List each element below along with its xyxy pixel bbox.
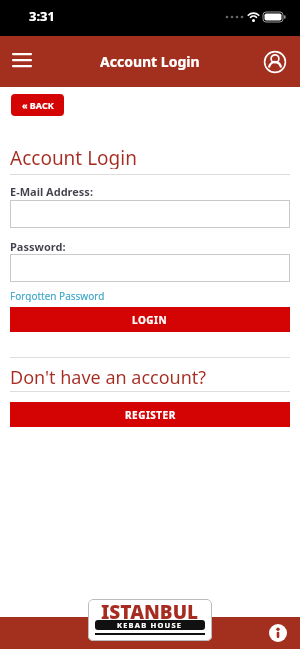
staticText: KEBAB HOUSE bbox=[117, 620, 183, 630]
button[interactable]: ISTANBUL bbox=[88, 599, 212, 641]
button[interactable]: REGISTER bbox=[10, 402, 290, 427]
button[interactable]: « BACK bbox=[11, 94, 64, 116]
staticText: ISTANBUL bbox=[101, 599, 199, 620]
staticText: « BACK bbox=[22, 99, 54, 111]
staticText: Don't have an account? bbox=[10, 365, 207, 388]
staticText: REGISTER bbox=[125, 408, 176, 422]
button[interactable]: LOGIN bbox=[10, 307, 290, 332]
staticText: 3:31 bbox=[29, 7, 55, 25]
button[interactable] bbox=[10, 200, 290, 228]
staticText: Password: bbox=[10, 239, 66, 252]
button[interactable] bbox=[10, 254, 290, 282]
staticText: Account Login bbox=[100, 52, 200, 71]
button[interactable] bbox=[263, 50, 287, 74]
button[interactable]: Forgotten Password bbox=[10, 289, 105, 302]
staticText: LOGIN bbox=[132, 313, 168, 327]
staticText: Forgotten Password bbox=[10, 289, 105, 302]
staticText: Account Login bbox=[10, 145, 137, 169]
button[interactable] bbox=[269, 624, 287, 642]
button[interactable] bbox=[6, 46, 38, 74]
staticText: E-Mail Address: bbox=[10, 184, 93, 197]
